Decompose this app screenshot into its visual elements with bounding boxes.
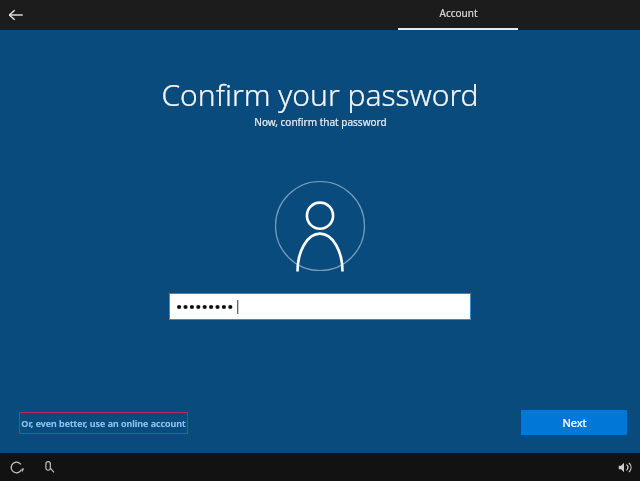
button[interactable]: Or, even better, use an online account bbox=[19, 412, 188, 434]
staticText: Next bbox=[562, 415, 587, 430]
button[interactable]: Ease of access bbox=[4, 455, 28, 479]
button[interactable] bbox=[170, 294, 470, 319]
button[interactable]: Input options bbox=[36, 455, 60, 479]
staticText: Or, even better, use an online account bbox=[21, 417, 186, 429]
button[interactable]: Account bbox=[398, 0, 518, 30]
button[interactable]: Back bbox=[3, 2, 29, 28]
staticText: Account bbox=[439, 6, 478, 20]
button[interactable]: Volume bbox=[612, 455, 636, 479]
button[interactable]: Next bbox=[521, 410, 627, 435]
staticText: Confirm your password bbox=[161, 74, 479, 115]
staticText: Now, confirm that password bbox=[254, 115, 387, 129]
